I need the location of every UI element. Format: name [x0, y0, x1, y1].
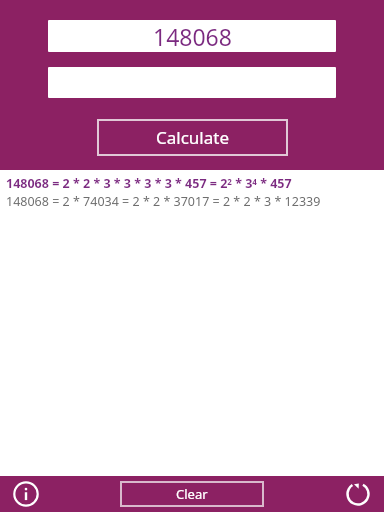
- button[interactable]: Clear: [120, 481, 264, 507]
- staticText: 148068 = 2 * 74034 = 2 * 2 * 37017 = 2 *…: [6, 193, 321, 210]
- staticText: Calculate: [156, 126, 229, 149]
- button[interactable]: 148068: [48, 20, 336, 52]
- staticText: Clear: [176, 485, 208, 503]
- staticText: 148068 = 2 * 2 * 3 * 3 * 3 * 3 * 457 = 2…: [6, 175, 292, 192]
- button[interactable]: Info: [0, 476, 52, 512]
- button[interactable]: Calculate: [97, 119, 288, 156]
- staticText: 148068: [153, 21, 232, 52]
- button[interactable]: Reset: [332, 476, 384, 512]
